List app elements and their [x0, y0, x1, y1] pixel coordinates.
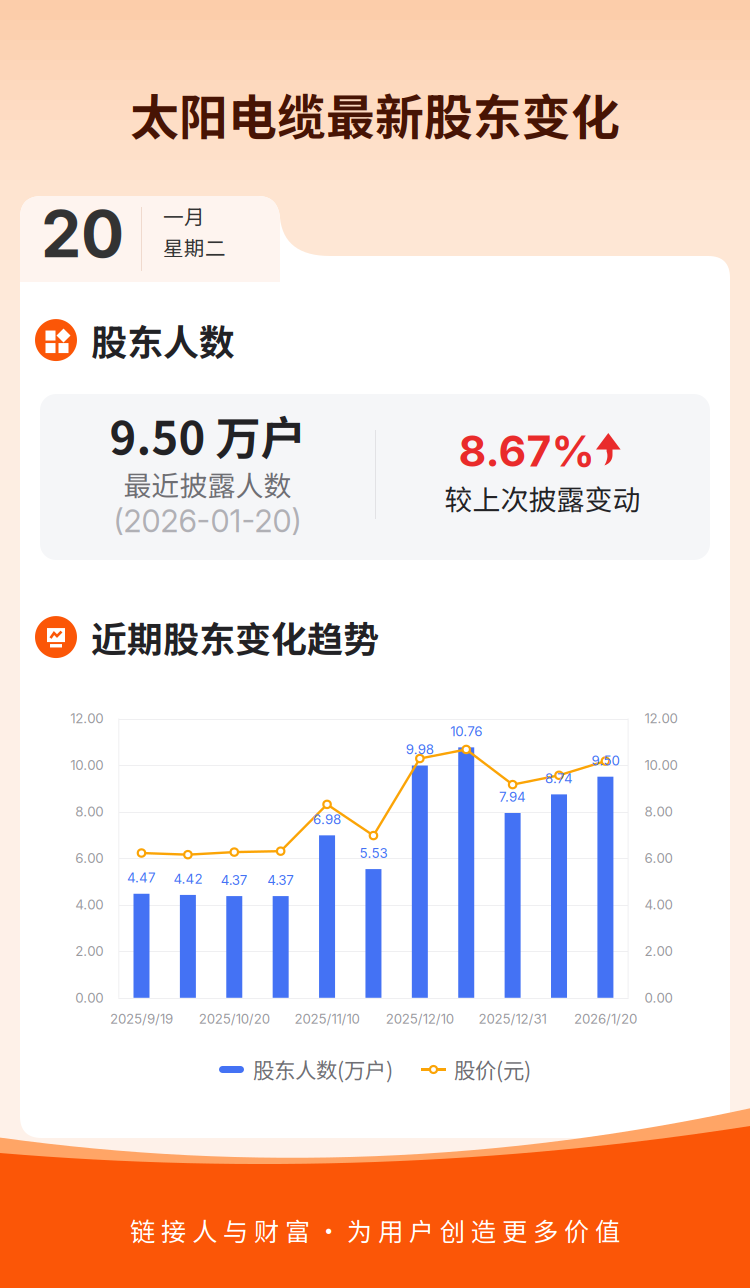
staticText: 最近披露人数 — [123, 464, 291, 504]
staticText: 0.00 — [75, 990, 103, 1006]
staticText: 7.94 — [499, 789, 526, 805]
staticText: 10.00 — [70, 757, 103, 773]
staticText: 12.00 — [645, 710, 678, 726]
staticText: 6.98 — [313, 811, 341, 827]
staticText: 股价(元) — [454, 1054, 531, 1084]
staticText: 链 接 人 与 财 富 · 为 用 户 创 造 更 多 价 值 — [130, 1212, 620, 1248]
staticText: 8.00 — [645, 803, 673, 820]
staticText: 星期二 — [163, 232, 226, 262]
staticText: 较上次披露变动 — [444, 478, 640, 518]
staticText: 4.42 — [173, 871, 202, 887]
staticText: 10.00 — [645, 757, 678, 773]
staticText: 4.00 — [75, 897, 103, 913]
staticText: 8.00 — [75, 803, 103, 820]
staticText: 2025/12/10 — [386, 1011, 454, 1027]
staticText: 2025/10/20 — [199, 1011, 270, 1027]
staticText: 0.00 — [645, 990, 673, 1006]
staticText: 2.00 — [75, 943, 103, 959]
staticText: 5.53 — [359, 845, 387, 861]
staticText: 9.50 — [591, 753, 619, 769]
staticText: 一月 — [163, 201, 205, 231]
staticText: 太阳电缆最新股东变化 — [130, 79, 620, 149]
staticText: 9.50 万户 — [109, 402, 305, 468]
staticText: 12.00 — [70, 710, 103, 726]
staticText: 2026/1/20 — [574, 1011, 637, 1027]
staticText: 股东人数(万户) — [253, 1054, 393, 1084]
staticText: 8.74 — [545, 770, 573, 786]
staticText: 4.00 — [645, 897, 673, 913]
staticText: 8.67% — [458, 425, 594, 477]
staticText: 4.37 — [267, 872, 294, 888]
staticText: 2025/11/10 — [295, 1011, 360, 1027]
staticText: (2026-01-20) — [113, 502, 301, 539]
staticText: 20 — [41, 195, 124, 273]
staticText: 股东人数 — [91, 314, 235, 366]
staticText: 10.76 — [450, 723, 482, 739]
staticText: 6.00 — [645, 850, 673, 866]
staticText: 4.47 — [127, 870, 156, 886]
staticText: 9.98 — [406, 741, 434, 757]
staticText: 2025/9/19 — [110, 1011, 173, 1027]
staticText: 6.00 — [75, 850, 103, 866]
staticText: 2.00 — [645, 943, 673, 959]
staticText: 近期股东变化趋势 — [91, 611, 379, 663]
staticText: 2025/12/31 — [479, 1011, 547, 1027]
staticText: 4.37 — [221, 872, 248, 888]
